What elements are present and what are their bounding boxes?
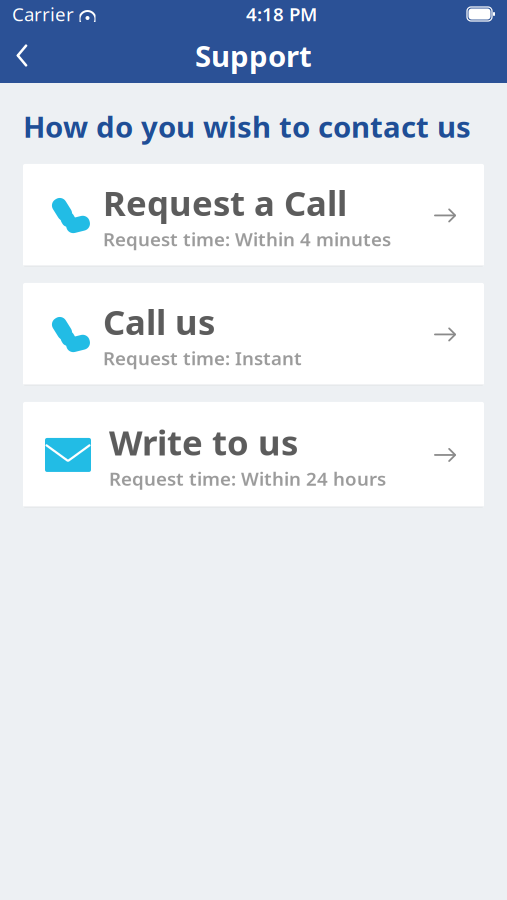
staticText: Request time: Within 24 hours (109, 466, 386, 491)
staticText: Write to us (109, 419, 298, 465)
button[interactable]: Back (0, 33, 44, 77)
button[interactable]: Call us (23, 283, 484, 386)
staticText: Request time: Within 4 minutes (103, 227, 391, 251)
staticText: 4:18 PM (246, 2, 317, 26)
button[interactable]: Write to us (23, 402, 484, 508)
staticText: Request time: Instant (103, 346, 302, 370)
staticText: Request a Call (103, 179, 347, 225)
staticText: How do you wish to contact us (23, 107, 471, 146)
staticText: Carrier (12, 2, 74, 26)
staticText: Call us (103, 298, 215, 344)
button[interactable]: Request a Call (23, 164, 484, 267)
staticText: Support (195, 36, 312, 75)
